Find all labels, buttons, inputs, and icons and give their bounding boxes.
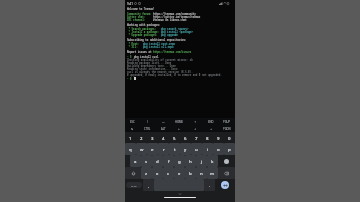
button[interactable]: ↹ [125, 125, 140, 132]
staticText: . [209, 183, 211, 188]
button[interactable]: y [180, 143, 191, 155]
staticText: 0 [228, 135, 231, 141]
staticText: Reading package lists... Done [127, 61, 172, 64]
button[interactable]: w [136, 143, 147, 155]
button[interactable]: x [152, 167, 163, 179]
staticText: o [217, 146, 220, 152]
staticText: j [201, 158, 203, 164]
button[interactable]: CTRL [140, 125, 155, 132]
staticText: n [200, 170, 203, 176]
button[interactable]: HOME [171, 118, 187, 125]
staticText: 5 [173, 135, 176, 141]
button[interactable]: ESC [125, 118, 140, 125]
staticText: 9 [217, 135, 220, 141]
staticText: ↑ [194, 120, 197, 123]
staticText: ↓ [194, 127, 197, 130]
staticText: * Root: [127, 42, 143, 45]
button[interactable]: j [196, 155, 207, 167]
button[interactable]: Backspace [218, 167, 235, 179]
staticText: m [210, 170, 215, 176]
button[interactable]: 6 [180, 132, 191, 143]
button[interactable]: 8 [202, 132, 213, 143]
button[interactable]: t [169, 143, 180, 155]
button[interactable]: i [202, 143, 213, 155]
button[interactable]: , [143, 179, 154, 191]
button[interactable]: l [218, 155, 235, 167]
button[interactable]: f [163, 155, 174, 167]
staticText: — [162, 120, 165, 124]
staticText: https://gitter.im/termux/termux [153, 15, 201, 18]
button[interactable]: g [174, 155, 185, 167]
staticText: ↹ [131, 127, 134, 130]
button[interactable]: Shift [125, 167, 141, 179]
staticText: IRC channel: [127, 18, 153, 21]
button[interactable]: Enter [221, 181, 229, 189]
button[interactable]: m [207, 167, 218, 179]
button[interactable]: PGDN [219, 125, 235, 132]
button[interactable]: 4 [158, 132, 169, 143]
staticText: / [147, 120, 148, 124]
staticText: HOME [175, 120, 184, 124]
staticText: y [184, 146, 187, 152]
staticText: k [211, 158, 214, 164]
staticText: t [174, 146, 176, 152]
button[interactable]: 2 [136, 132, 147, 143]
staticText: ESC [130, 120, 135, 124]
button[interactable]: a [130, 155, 141, 167]
staticText: 2 [140, 135, 143, 141]
button[interactable]: . [204, 179, 215, 191]
staticText: https://termux.com/community [153, 12, 196, 15]
staticText: → [210, 127, 213, 130]
button[interactable]: END [203, 118, 219, 125]
button[interactable]: 3 [147, 132, 158, 143]
button[interactable]: v [174, 167, 185, 179]
button[interactable]: PGUP [219, 118, 235, 125]
button[interactable]: u [191, 143, 202, 155]
button[interactable]: q [125, 143, 136, 155]
button[interactable]: 1 [125, 132, 136, 143]
staticText: https://termux.com/issues [153, 50, 192, 53]
button[interactable]: h [185, 155, 196, 167]
staticText: ~ $ [127, 77, 134, 80]
button[interactable]: n [196, 167, 207, 179]
button[interactable]: s [141, 155, 152, 167]
button[interactable]: ?123 [126, 180, 142, 190]
staticText: f [168, 158, 170, 164]
button[interactable]: b [185, 167, 196, 179]
button[interactable]: 7 [191, 132, 202, 143]
button[interactable]: o [213, 143, 224, 155]
staticText: d [156, 158, 159, 164]
staticText: r [163, 146, 165, 152]
button[interactable]: ← [171, 125, 187, 132]
staticText: c [167, 170, 170, 176]
button[interactable]: z [141, 167, 152, 179]
staticText: Report issues at [127, 50, 153, 53]
staticText: 3 [151, 135, 154, 141]
button[interactable]: e [147, 143, 158, 155]
button[interactable]: / [140, 118, 155, 125]
staticText: Community forum: [127, 12, 153, 15]
staticText: pkg install curl [134, 55, 159, 58]
button[interactable]: 0 [224, 132, 235, 143]
staticText: * X11: [127, 45, 143, 48]
button[interactable]: 5 [169, 132, 180, 143]
staticText: 1 [129, 135, 132, 141]
button[interactable]: 9 [213, 132, 224, 143]
button[interactable]: k [207, 155, 218, 167]
staticText: 8 [206, 135, 209, 141]
staticText: curl is already the newest version (8.5.… [127, 70, 193, 73]
staticText: Checking availability of current mirror:… [127, 58, 193, 61]
button[interactable]: p [224, 143, 235, 155]
button[interactable]: — [155, 118, 171, 125]
button[interactable]: c [163, 167, 174, 179]
button[interactable]: ↑ [187, 118, 203, 125]
staticText: 6 [184, 135, 187, 141]
button[interactable]: ALT [155, 125, 171, 132]
staticText: , [148, 183, 150, 188]
button[interactable]: → [203, 125, 219, 132]
button[interactable]: r [158, 143, 169, 155]
button[interactable]: ↓ [187, 125, 203, 132]
button[interactable]: d [152, 155, 163, 167]
